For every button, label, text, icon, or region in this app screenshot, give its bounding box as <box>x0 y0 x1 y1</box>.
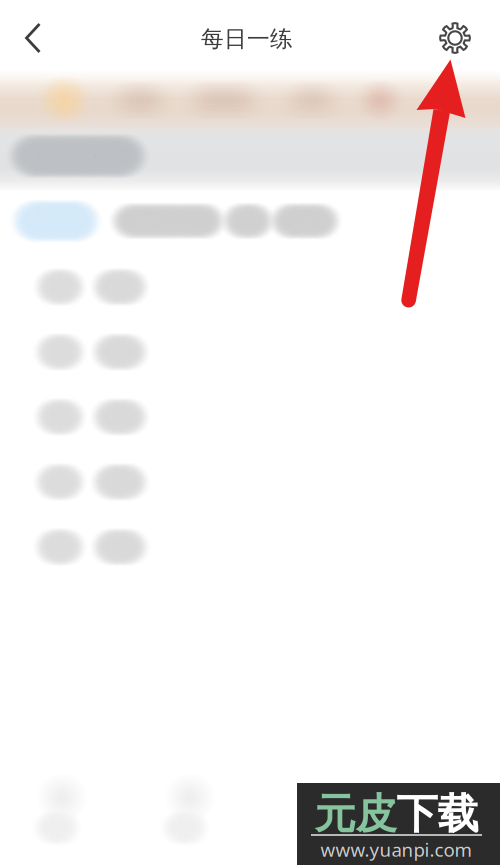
button[interactable]: Back <box>1 5 65 71</box>
staticText: www.yuanpi.com <box>320 837 471 862</box>
staticText: 元皮 <box>314 789 396 839</box>
staticText: 下载 <box>396 789 478 839</box>
staticText: 每日一练 <box>201 25 293 53</box>
button[interactable]: Settings <box>424 6 486 70</box>
